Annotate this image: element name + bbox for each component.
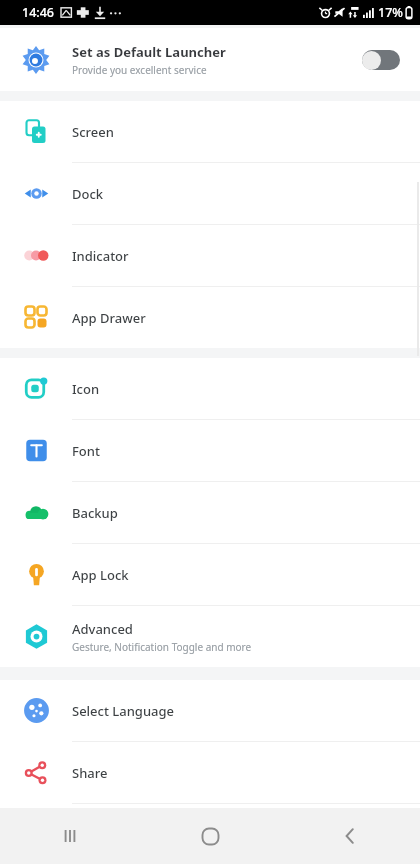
- button[interactable]: Dock: [0, 163, 420, 225]
- button[interactable]: Home: [140, 808, 280, 864]
- button[interactable]: Select Language: [0, 680, 420, 742]
- button[interactable]: Indicator: [0, 225, 420, 287]
- staticText: Select Language: [72, 702, 175, 720]
- button[interactable]: Set as Default Launcher: [0, 28, 420, 91]
- button[interactable]: Font: [0, 420, 420, 482]
- staticText: Set as Default Launcher: [72, 43, 226, 61]
- staticText: Backup: [72, 504, 118, 522]
- button[interactable]: Set as Default Launcher toggle: [362, 50, 400, 70]
- button[interactable]: Icon: [0, 358, 420, 420]
- staticText: 17%: [378, 4, 403, 21]
- button[interactable]: Advanced: [0, 606, 420, 667]
- staticText: Dock: [72, 185, 104, 203]
- staticText: App Drawer: [72, 309, 146, 327]
- staticText: Advanced: [72, 620, 133, 638]
- staticText: 14:46: [22, 4, 55, 21]
- button[interactable]: Share: [0, 742, 420, 804]
- button[interactable]: Screen: [0, 101, 420, 163]
- staticText: Indicator: [72, 247, 129, 265]
- staticText: Gesture, Notification Toggle and more: [72, 640, 252, 654]
- button[interactable]: App Lock: [0, 544, 420, 606]
- staticText: Share: [72, 764, 108, 782]
- button[interactable]: Back: [280, 808, 420, 864]
- staticText: Font: [72, 442, 100, 460]
- button[interactable]: Recent apps: [0, 808, 140, 864]
- button[interactable]: App Drawer: [0, 287, 420, 348]
- staticText: Screen: [72, 123, 114, 141]
- staticText: Icon: [72, 380, 100, 398]
- button[interactable]: Backup: [0, 482, 420, 544]
- staticText: App Lock: [72, 566, 129, 584]
- staticText: Provide you excellent service: [72, 63, 207, 77]
